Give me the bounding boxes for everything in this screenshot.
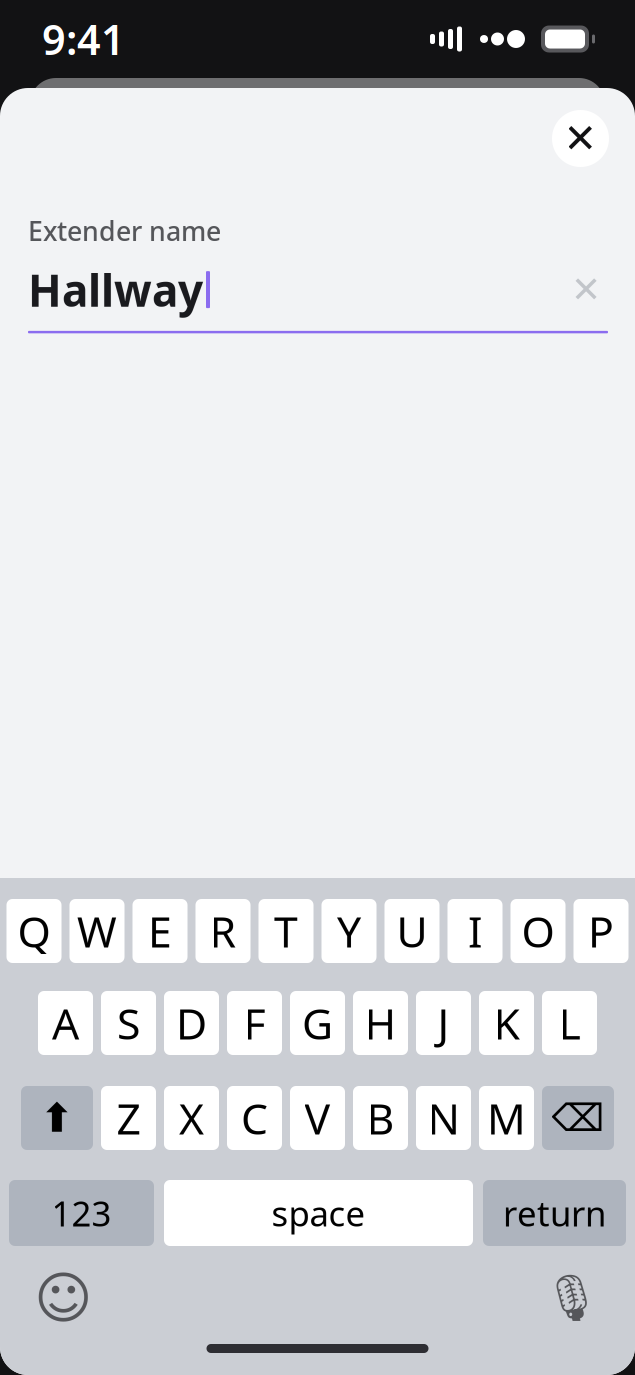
staticText: U xyxy=(396,903,427,959)
button[interactable]: S xyxy=(101,991,156,1055)
button[interactable]: Clear text xyxy=(564,268,608,312)
staticText: A xyxy=(52,995,79,1051)
button[interactable]: R xyxy=(195,899,250,963)
button[interactable]: O xyxy=(510,899,565,963)
staticText: ⌫ xyxy=(551,1097,604,1139)
button[interactable]: N xyxy=(416,1086,471,1150)
button[interactable]: A xyxy=(38,991,93,1055)
staticText: T xyxy=(274,903,298,959)
staticText: S xyxy=(117,995,140,1051)
staticText: Hallway xyxy=(28,260,203,319)
button[interactable]: E xyxy=(132,899,187,963)
button[interactable]: L xyxy=(542,991,597,1055)
staticText: I xyxy=(468,903,482,959)
button[interactable]: Dictation xyxy=(542,1268,602,1328)
button[interactable]: F xyxy=(227,991,282,1055)
staticText: return xyxy=(503,1190,606,1236)
button[interactable]: 123 xyxy=(9,1180,154,1246)
button[interactable]: Close xyxy=(552,110,609,167)
staticText: space xyxy=(271,1190,365,1236)
staticText: ⬆ xyxy=(40,1095,74,1141)
staticText: K xyxy=(493,995,519,1051)
staticText: X xyxy=(179,1090,204,1146)
button[interactable]: Q xyxy=(6,899,61,963)
button[interactable]: D xyxy=(164,991,219,1055)
button[interactable]: Delete xyxy=(542,1086,614,1150)
staticText: D xyxy=(176,995,207,1051)
button[interactable]: B xyxy=(353,1086,408,1150)
staticText: 9:41 xyxy=(42,12,125,66)
staticText: B xyxy=(366,1090,394,1146)
staticText: Extender name xyxy=(28,213,221,248)
staticText: L xyxy=(558,995,580,1051)
button[interactable]: M xyxy=(479,1086,534,1150)
button[interactable]: H xyxy=(353,991,408,1055)
staticText: J xyxy=(437,995,449,1051)
staticText: V xyxy=(304,1090,330,1146)
button[interactable]: G xyxy=(290,991,345,1055)
button[interactable]: return xyxy=(483,1180,626,1246)
button[interactable]: K xyxy=(479,991,534,1055)
staticText: P xyxy=(588,903,614,959)
staticText: C xyxy=(241,1090,268,1146)
staticText: E xyxy=(148,903,172,959)
button[interactable]: P xyxy=(573,899,628,963)
staticText: W xyxy=(77,903,117,959)
button[interactable]: C xyxy=(227,1086,282,1150)
staticText: ✕ xyxy=(571,269,601,310)
staticText: O xyxy=(521,903,554,959)
button[interactable]: Z xyxy=(101,1086,156,1150)
button[interactable]: Y xyxy=(321,899,376,963)
button[interactable]: Shift xyxy=(21,1086,93,1150)
staticText: 🎙 xyxy=(543,1272,601,1324)
button[interactable]: J xyxy=(416,991,471,1055)
staticText: ☺ xyxy=(34,1266,92,1330)
staticText: Z xyxy=(116,1090,140,1146)
staticText: F xyxy=(243,995,265,1051)
button[interactable]: I xyxy=(447,899,502,963)
staticText: Q xyxy=(17,903,50,959)
staticText: M xyxy=(487,1090,526,1146)
button[interactable]: T xyxy=(258,899,313,963)
staticText: ✕ xyxy=(563,116,597,161)
button[interactable]: V xyxy=(290,1086,345,1150)
staticText: G xyxy=(302,995,333,1051)
staticText: N xyxy=(427,1090,459,1146)
button[interactable]: X xyxy=(164,1086,219,1150)
staticText: Y xyxy=(337,903,361,959)
button[interactable]: U xyxy=(384,899,439,963)
button[interactable]: Emoji xyxy=(33,1268,93,1328)
staticText: H xyxy=(364,995,396,1051)
staticText: 123 xyxy=(51,1190,111,1236)
button[interactable]: W xyxy=(69,899,124,963)
staticText: R xyxy=(209,903,236,959)
button[interactable]: space xyxy=(164,1180,473,1246)
